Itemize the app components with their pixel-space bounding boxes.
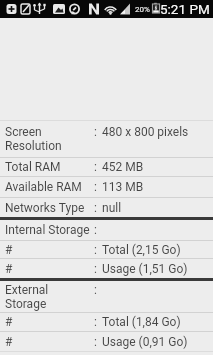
staticText: # [5, 335, 13, 349]
staticText: # [5, 315, 13, 329]
staticText: : [94, 335, 97, 349]
staticText: : [94, 243, 97, 257]
staticText: Total (1,84 Go) [102, 315, 181, 329]
button[interactable]: Networks Type [0, 198, 213, 217]
staticText: : [94, 223, 97, 237]
staticText: : [94, 315, 97, 329]
button[interactable]: # [0, 259, 213, 278]
button[interactable]: Total RAM [0, 158, 213, 176]
button[interactable]: Available RAM [0, 177, 213, 197]
staticText: # [5, 243, 13, 257]
staticText: : [94, 180, 97, 194]
staticText: null [102, 201, 122, 215]
button[interactable]: # [0, 332, 213, 351]
staticText: : [94, 283, 97, 297]
staticText: Usage (1,51 Go) [102, 262, 188, 276]
button[interactable]: Internal Storage [0, 220, 213, 240]
staticText: 5:21 PM [160, 1, 210, 17]
staticText: Available RAM [5, 180, 82, 194]
staticText: 20% [135, 5, 150, 14]
staticText: Internal Storage [5, 223, 90, 237]
staticText: Resolution [5, 139, 62, 153]
staticText: Networks Type [5, 201, 85, 215]
button[interactable]: # [0, 241, 213, 258]
staticText: External [5, 283, 49, 297]
button[interactable]: External [0, 281, 213, 312]
staticText: # [5, 262, 13, 276]
staticText: 113 MB [102, 180, 144, 194]
button[interactable]: # [0, 313, 213, 331]
staticText: 452 MB [102, 160, 144, 174]
staticText: : [94, 160, 97, 174]
staticText: : [94, 262, 97, 276]
button[interactable]: Screen [0, 121, 213, 157]
staticText: Total RAM [5, 160, 61, 174]
staticText: : [94, 125, 97, 139]
staticText: 480 x 800 pixels [102, 125, 189, 139]
staticText: Total (2,15 Go) [102, 243, 181, 257]
staticText: Usage (0,91 Go) [102, 335, 188, 349]
staticText: : [94, 201, 97, 215]
staticText: Screen [5, 125, 42, 139]
staticText: Storage [5, 297, 47, 311]
